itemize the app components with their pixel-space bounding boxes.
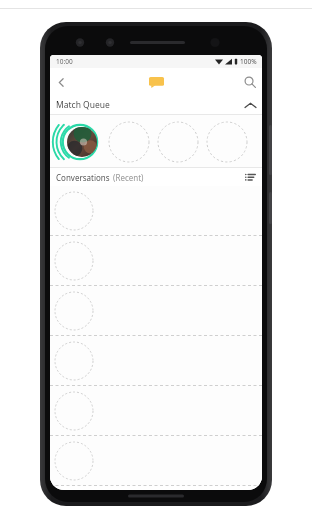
- staticText: Match Queue: [56, 99, 110, 111]
- button[interactable]: [50, 336, 262, 386]
- button[interactable]: Empty match slot: [206, 121, 248, 163]
- button[interactable]: Back: [50, 71, 72, 93]
- button[interactable]: [50, 236, 262, 286]
- button[interactable]: Match profile: [53, 120, 101, 164]
- button[interactable]: [50, 436, 262, 486]
- staticText: Conversations: [56, 172, 110, 183]
- staticText: 100%: [240, 57, 257, 66]
- button[interactable]: Search: [238, 70, 262, 94]
- staticText: 10:00: [56, 57, 73, 66]
- button[interactable]: Match Queue: [50, 95, 262, 115]
- button[interactable]: Empty match slot: [108, 121, 150, 163]
- button[interactable]: [50, 186, 262, 236]
- staticText: (Recent): [113, 172, 144, 183]
- button[interactable]: [50, 386, 262, 436]
- button[interactable]: [50, 286, 262, 336]
- button[interactable]: Empty match slot: [157, 121, 199, 163]
- button[interactable]: Messages: [143, 72, 169, 92]
- button[interactable]: Sort conversations: [243, 171, 257, 183]
